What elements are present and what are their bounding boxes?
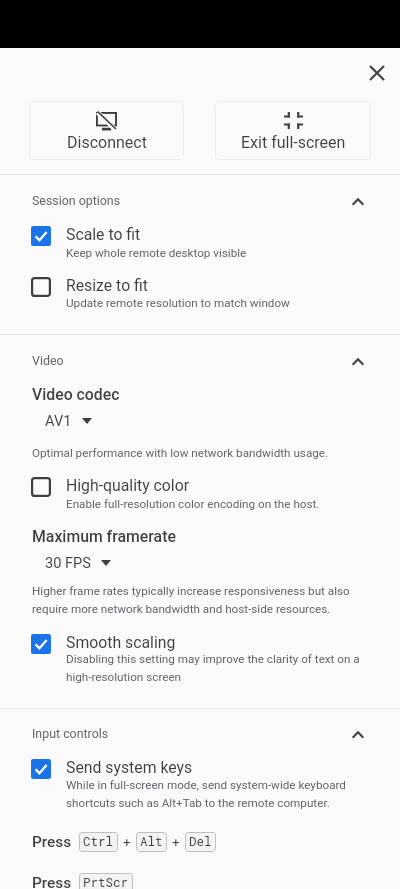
staticText: Alt: [140, 835, 163, 849]
staticText: Video: [32, 353, 64, 369]
button[interactable]: [0, 469, 400, 521]
staticText: Input controls: [32, 726, 109, 742]
staticText: Del: [189, 835, 212, 849]
staticText: Keep whole remote desktop visible: [66, 246, 247, 260]
staticText: Exit full-screen: [241, 135, 346, 152]
button[interactable]: [0, 269, 400, 320]
staticText: Higher frame rates typically increase re…: [32, 584, 350, 598]
staticText: PrtScr: [83, 876, 129, 889]
staticText: Ctrl: [83, 835, 114, 849]
staticText: Enable full-resolution color encoding on…: [66, 497, 320, 511]
button[interactable]: Session options: [0, 183, 400, 217]
staticText: high-resolution screen: [66, 670, 182, 684]
staticText: +: [123, 834, 131, 851]
button[interactable]: Disconnect: [29, 101, 184, 160]
button[interactable]: Press: [0, 870, 400, 889]
staticText: Disabling this setting may improve the c…: [66, 652, 360, 666]
button[interactable]: 30 FPS: [41, 552, 117, 574]
staticText: While in full-screen mode, send system-w…: [66, 778, 346, 792]
staticText: Maximum framerate: [32, 529, 176, 546]
staticText: shortcuts such as Alt+Tab to the remote …: [66, 796, 330, 810]
staticText: Smooth scaling: [66, 635, 176, 652]
staticText: High-quality color: [66, 478, 190, 495]
staticText: Session options: [32, 193, 121, 209]
button[interactable]: [0, 751, 400, 820]
button[interactable]: Video: [0, 343, 400, 377]
staticText: Disconnect: [67, 135, 147, 152]
staticText: Video codec: [32, 387, 120, 404]
staticText: Optimal performance with low network ban…: [32, 446, 329, 460]
button[interactable]: Press: [0, 829, 400, 855]
staticText: Update remote resolution to match window: [66, 296, 290, 310]
staticText: AV1: [45, 413, 72, 429]
staticText: Scale to fit: [66, 227, 141, 244]
button[interactable]: Close: [364, 60, 390, 86]
staticText: Press: [32, 875, 72, 889]
staticText: +: [172, 834, 180, 851]
button[interactable]: [0, 626, 400, 694]
staticText: 30 FPS: [45, 555, 91, 571]
button[interactable]: Input controls: [0, 716, 400, 750]
button[interactable]: Exit full-screen: [215, 101, 371, 160]
staticText: require more network bandwidth and host-…: [32, 602, 331, 616]
button[interactable]: AV1: [41, 410, 98, 432]
staticText: Send system keys: [66, 760, 193, 777]
staticText: Resize to fit: [66, 278, 148, 295]
staticText: Press: [32, 834, 72, 851]
button[interactable]: [0, 218, 400, 270]
